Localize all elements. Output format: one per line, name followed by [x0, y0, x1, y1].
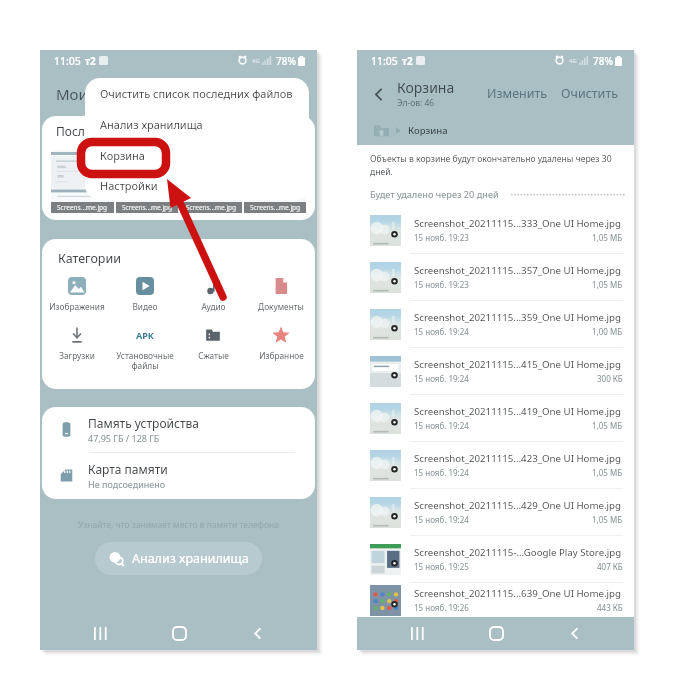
- staticText: Screens...me.jpg: [57, 203, 108, 212]
- staticText: Видео: [132, 301, 158, 312]
- staticText: Память устройства: [88, 415, 199, 431]
- staticText: Последние файлы: [56, 123, 163, 139]
- staticText: т2: [85, 54, 96, 68]
- staticText: 15 нояб. 19:26: [414, 602, 469, 613]
- button[interactable]: Сжатые: [179, 326, 247, 361]
- button[interactable]: Screenshot_20211115...333_One UI Home.jp…: [357, 207, 634, 253]
- button[interactable]: Home: [161, 617, 197, 650]
- staticText: Загрузки: [59, 350, 95, 361]
- staticText: APK: [136, 329, 154, 341]
- staticText: Screenshot_20211115...415_One UI Home.jp…: [414, 358, 622, 371]
- button[interactable]: Back: [239, 617, 275, 650]
- button[interactable]: Очистить список последних файлов: [85, 78, 309, 109]
- staticText: Изображения: [49, 301, 105, 312]
- staticText: 78%: [276, 54, 296, 68]
- button[interactable]: APK: [111, 326, 179, 372]
- staticText: 47,95 ГБ / 128 ГБ: [88, 432, 160, 444]
- button[interactable]: Очистить: [556, 80, 624, 107]
- button[interactable]: Screenshot_20211115...639_One UI Home.jp…: [357, 583, 634, 617]
- staticText: Сжатые: [198, 350, 229, 361]
- staticText: Screenshot_20211115...429_One UI Home.jp…: [414, 499, 622, 512]
- staticText: 11:05: [54, 54, 81, 68]
- staticText: 4G: [569, 57, 577, 65]
- staticText: Очистить: [561, 85, 619, 102]
- staticText: Screenshot_20211115-...Google Play Store…: [414, 546, 622, 559]
- button[interactable]: Изменить: [482, 80, 553, 107]
- button[interactable]: Home: [478, 617, 514, 650]
- staticText: Карта памяти: [88, 461, 168, 477]
- staticText: Анализ хранилища: [100, 117, 203, 132]
- staticText: Корзина: [408, 124, 448, 137]
- staticText: 1,05 МБ: [592, 514, 623, 525]
- button[interactable]: Память устройства: [42, 407, 315, 452]
- staticText: 407 КБ: [597, 561, 623, 572]
- staticText: Корзина: [100, 148, 145, 163]
- button[interactable]: Recents: [399, 617, 435, 650]
- staticText: Screenshot_20211115...357_One UI Home.jp…: [414, 264, 622, 277]
- staticText: 443 КБ: [597, 602, 623, 613]
- button[interactable]: Карта памяти: [42, 453, 315, 498]
- staticText: 78%: [593, 54, 613, 68]
- staticText: Аудио: [201, 301, 226, 312]
- button[interactable]: Screenshot_20211115...423_One UI Home.jp…: [357, 442, 634, 488]
- staticText: Избранное: [259, 350, 304, 361]
- button[interactable]: Видео: [111, 277, 179, 312]
- staticText: 1,05 МБ: [592, 467, 623, 478]
- staticText: Корзина: [397, 78, 455, 97]
- button[interactable]: Настройки: [85, 171, 309, 200]
- button[interactable]: Изображения: [42, 277, 111, 312]
- staticText: Анализ хранилища: [132, 550, 249, 567]
- button[interactable]: Избранное: [247, 326, 315, 361]
- staticText: 15 нояб. 19:23: [414, 279, 469, 290]
- staticText: т2: [402, 54, 413, 68]
- staticText: 15 нояб. 19:24: [414, 326, 469, 337]
- staticText: Screenshot_20211115...419_One UI Home.jp…: [414, 405, 622, 418]
- button[interactable]: Screenshot_20211115...415_One UI Home.jp…: [357, 348, 634, 394]
- staticText: Эл-ов: 46: [397, 97, 435, 109]
- staticText: 15 нояб. 19:24: [414, 420, 469, 431]
- staticText: 1,00 МБ: [592, 326, 623, 337]
- button[interactable]: Анализ хранилища: [85, 109, 309, 140]
- staticText: 15 нояб. 19:23: [414, 232, 469, 243]
- staticText: Мои файлы: [56, 84, 141, 104]
- button[interactable]: Загрузки: [42, 326, 111, 361]
- button[interactable]: Recents: [82, 617, 118, 650]
- staticText: Документы: [258, 301, 304, 312]
- staticText: Screens...me.jpg: [250, 203, 301, 212]
- button[interactable]: Корзина: [85, 140, 309, 171]
- staticText: 1,05 МБ: [592, 279, 623, 290]
- staticText: 300 КБ: [597, 373, 623, 384]
- staticText: 15 нояб. 19:24: [414, 467, 469, 478]
- staticText: Screens...me.jpg: [122, 203, 173, 212]
- staticText: Узнайте, что занимает место в памяти тел…: [40, 519, 317, 531]
- staticText: Очистить список последних файлов: [100, 86, 293, 101]
- staticText: Будет удалено через 20 дней: [370, 188, 499, 201]
- staticText: Объекты в корзине будут окончательно уда…: [370, 153, 623, 177]
- staticText: Не подсоединено: [88, 478, 166, 490]
- staticText: Категории: [58, 250, 121, 267]
- staticText: 4G: [252, 57, 260, 65]
- staticText: Screens...me.jpg: [186, 203, 237, 212]
- staticText: 1,05 МБ: [592, 420, 623, 431]
- button[interactable]: Screenshot_20211115...429_One UI Home.jp…: [357, 489, 634, 535]
- staticText: Настройки: [100, 178, 158, 193]
- button[interactable]: Screenshot_20211115...357_One UI Home.jp…: [357, 254, 634, 300]
- staticText: Screenshot_20211115...359_One UI Home.jp…: [414, 311, 622, 324]
- button[interactable]: Screenshot_20211115-...Google Play Store…: [357, 536, 634, 582]
- button[interactable]: Back: [365, 81, 391, 107]
- staticText: 1,05 МБ: [592, 232, 623, 243]
- button[interactable]: Screenshot_20211115...359_One UI Home.jp…: [357, 301, 634, 347]
- staticText: Screenshot_20211115...639_One UI Home.jp…: [414, 587, 622, 600]
- staticText: 15 нояб. 19:24: [414, 514, 469, 525]
- staticText: Screenshot_20211115...333_One UI Home.jp…: [414, 217, 622, 230]
- button[interactable]: Анализ хранилища: [95, 542, 262, 575]
- button[interactable]: Документы: [247, 277, 315, 312]
- staticText: Изменить: [487, 85, 548, 102]
- staticText: Установочные файлы: [116, 350, 174, 372]
- staticText: Screenshot_20211115...423_One UI Home.jp…: [414, 452, 622, 465]
- button[interactable]: Back: [556, 617, 592, 650]
- staticText: 15 нояб. 19:25: [414, 561, 469, 572]
- button[interactable]: Аудио: [179, 277, 247, 312]
- staticText: 15 нояб. 19:24: [414, 373, 469, 384]
- button[interactable]: Screenshot_20211115...419_One UI Home.jp…: [357, 395, 634, 441]
